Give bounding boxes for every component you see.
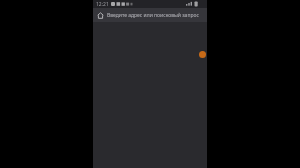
staticText: Введите адрес или поисковый запрос (107, 12, 199, 19)
staticText: 12:21 (96, 1, 109, 8)
button[interactable]: Введите адрес или поисковый запрос (107, 8, 207, 22)
button[interactable]: Home (93, 8, 107, 22)
